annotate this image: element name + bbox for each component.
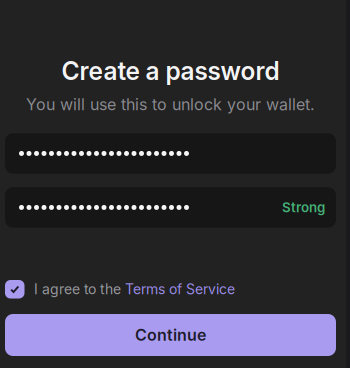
staticText: I agree to the	[34, 281, 125, 298]
staticText: Continue	[135, 325, 206, 345]
staticText: You will use this to unlock your wallet.	[26, 95, 315, 114]
staticText: Terms of Service	[125, 281, 235, 298]
staticText: Strong	[282, 199, 325, 215]
button[interactable]: I agree to the	[5, 280, 336, 298]
button[interactable]: Continue	[5, 314, 336, 356]
staticText: Create a password	[61, 56, 279, 86]
